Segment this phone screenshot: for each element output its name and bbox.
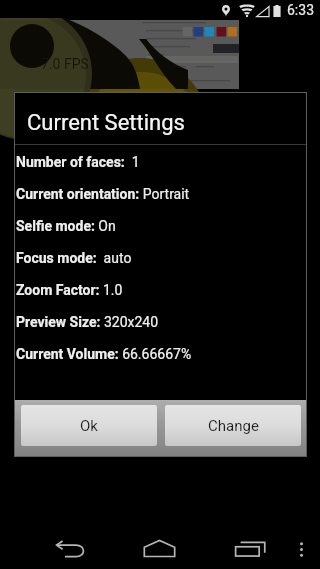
staticText: Zoom Factor: 1.0 bbox=[16, 282, 123, 298]
button[interactable]: Change bbox=[165, 405, 301, 446]
button[interactable]: Home bbox=[118, 521, 202, 569]
button[interactable]: Recent apps bbox=[206, 521, 278, 569]
staticText: Focus mode: auto bbox=[16, 250, 132, 266]
staticText: Current orientation: Portrait bbox=[16, 186, 190, 202]
staticText: 7.0 FPS bbox=[41, 56, 89, 72]
button[interactable]: More options bbox=[288, 521, 316, 569]
staticText: Number of faces: 1 bbox=[16, 154, 140, 170]
button[interactable]: Ok bbox=[21, 405, 157, 446]
staticText: 6:33 bbox=[287, 2, 314, 18]
staticText: Current Settings bbox=[27, 110, 185, 136]
staticText: Selfie mode: On bbox=[16, 218, 116, 234]
staticText: Change bbox=[208, 417, 259, 435]
staticText: Ok bbox=[80, 417, 98, 435]
button[interactable]: Back bbox=[30, 521, 114, 569]
staticText: Preview Size: 320x240 bbox=[16, 314, 159, 330]
staticText: Current Volume: 66.66667% bbox=[16, 346, 192, 362]
